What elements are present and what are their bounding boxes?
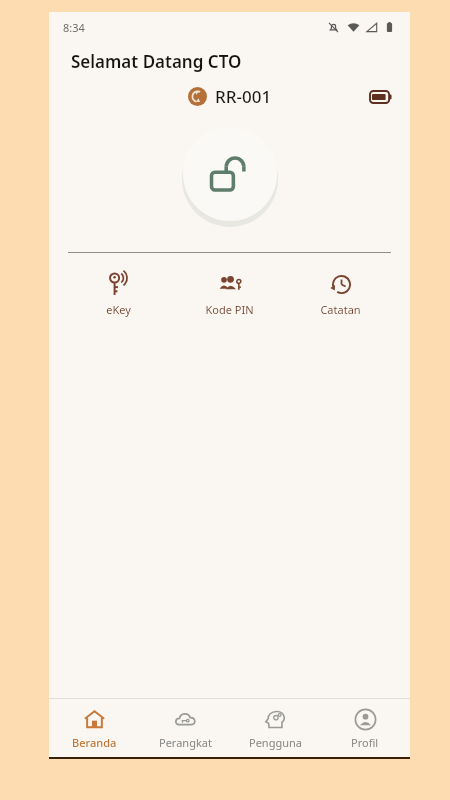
staticText: Kode PIN (205, 302, 254, 317)
button[interactable]: Catatan (285, 269, 396, 319)
staticText: Profil (351, 735, 379, 750)
staticText: RR-001 (215, 85, 272, 108)
button[interactable]: Perangkat (140, 704, 230, 754)
button[interactable]: Kode PIN (174, 269, 285, 319)
button[interactable]: Unlock (183, 127, 277, 221)
staticText: Catatan (320, 302, 361, 317)
button[interactable]: eKey (63, 269, 174, 319)
staticText: Perangkat (159, 735, 212, 750)
staticText: Pengguna (249, 735, 302, 750)
staticText: Beranda (72, 735, 117, 750)
button[interactable]: Profil (320, 704, 410, 754)
staticText: Selamat Datang CTO (71, 50, 242, 73)
staticText: eKey (106, 302, 131, 317)
button[interactable]: Pengguna (230, 704, 320, 754)
staticText: 8:34 (63, 20, 85, 35)
button[interactable]: Beranda (49, 704, 140, 754)
